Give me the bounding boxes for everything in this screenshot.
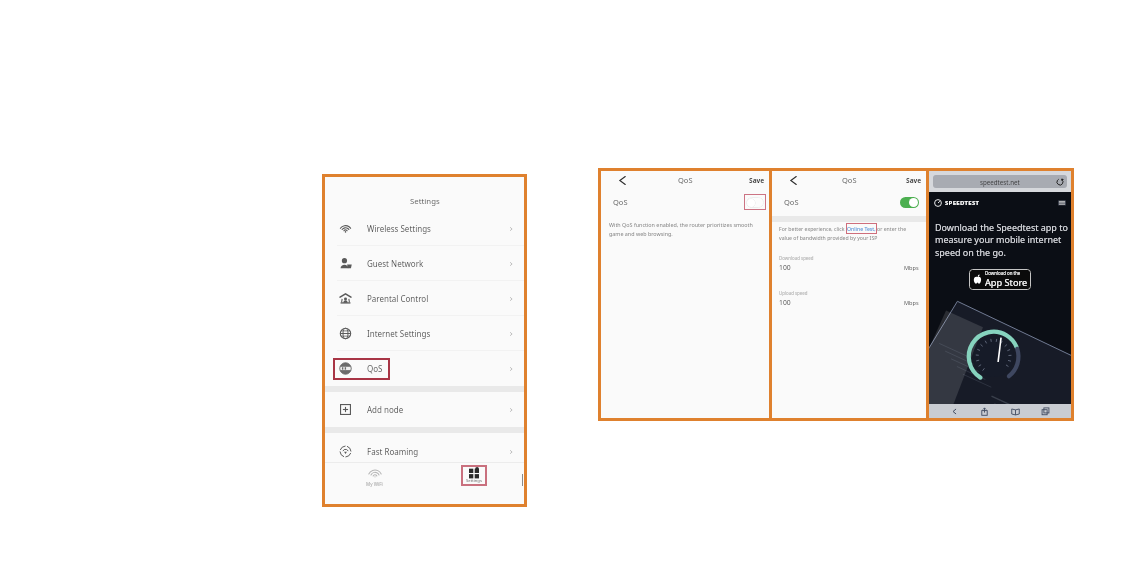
button[interactable]: My WiFi xyxy=(325,464,424,490)
button[interactable]: Share xyxy=(980,407,989,416)
button[interactable]: Wireless Settings xyxy=(325,211,524,246)
staticText: My WiFi xyxy=(366,481,383,487)
staticText: With QoS function enabled, the router pr… xyxy=(609,221,763,237)
button[interactable]: Back xyxy=(950,407,959,416)
staticText: Internet Settings xyxy=(367,328,431,339)
button[interactable]: QoS xyxy=(325,351,524,386)
button[interactable]: Settings xyxy=(424,464,524,490)
staticText: For better experience, click xyxy=(779,225,846,232)
staticText: 100 xyxy=(779,298,791,307)
staticText: or enter the xyxy=(877,225,907,232)
staticText: Download on the xyxy=(985,270,1021,276)
button[interactable]: Add node xyxy=(325,392,524,427)
staticText: Download speed xyxy=(779,255,814,261)
staticText: QoS xyxy=(613,197,628,207)
button[interactable]: QoS toggle xyxy=(900,197,919,208)
button[interactable]: Fast Roaming xyxy=(325,433,524,462)
staticText: QoS xyxy=(842,175,857,185)
button[interactable]: Back xyxy=(788,175,799,186)
staticText: Wireless Settings xyxy=(367,223,431,234)
staticText: Settings xyxy=(466,478,482,484)
staticText: Mbps xyxy=(904,264,919,272)
button[interactable]: Tabs xyxy=(1041,407,1050,416)
button[interactable]: Back xyxy=(617,175,628,186)
button[interactable]: Parental Control xyxy=(325,281,524,316)
button[interactable]: Internet Settings xyxy=(325,316,524,351)
staticText: Add node xyxy=(367,404,404,415)
staticText: value of bandwidth provided by your ISP xyxy=(779,234,878,241)
button[interactable]: Save xyxy=(906,176,922,185)
staticText: speedtest.net xyxy=(980,178,1020,186)
staticText: App Store xyxy=(985,276,1028,289)
button[interactable]: Download on the App Store xyxy=(969,269,1031,290)
button[interactable]: Bookmarks xyxy=(1011,407,1020,416)
staticText: QoS xyxy=(367,363,383,374)
staticText: Guest Network xyxy=(367,258,424,269)
staticText: Download the Speedtest app to measure yo… xyxy=(935,221,1068,259)
staticText: QoS xyxy=(784,197,799,207)
button[interactable]: Online Test, xyxy=(847,223,876,234)
staticText: Settings xyxy=(410,196,440,207)
staticText: Upload speed xyxy=(779,290,808,296)
staticText: Online Test, xyxy=(847,225,876,232)
button[interactable]: Menu xyxy=(1058,199,1066,207)
button[interactable]: Guest Network xyxy=(325,246,524,281)
button[interactable]: Address bar xyxy=(933,175,1067,188)
staticText: QoS xyxy=(678,175,693,185)
staticText: 100 xyxy=(779,263,791,272)
staticText: Fast Roaming xyxy=(367,446,419,457)
button[interactable]: QoS toggle xyxy=(744,194,766,210)
staticText: Parental Control xyxy=(367,293,429,304)
staticText: SPEEDTEST xyxy=(945,199,980,207)
staticText: Mbps xyxy=(904,299,919,307)
button[interactable]: Save xyxy=(749,176,765,185)
